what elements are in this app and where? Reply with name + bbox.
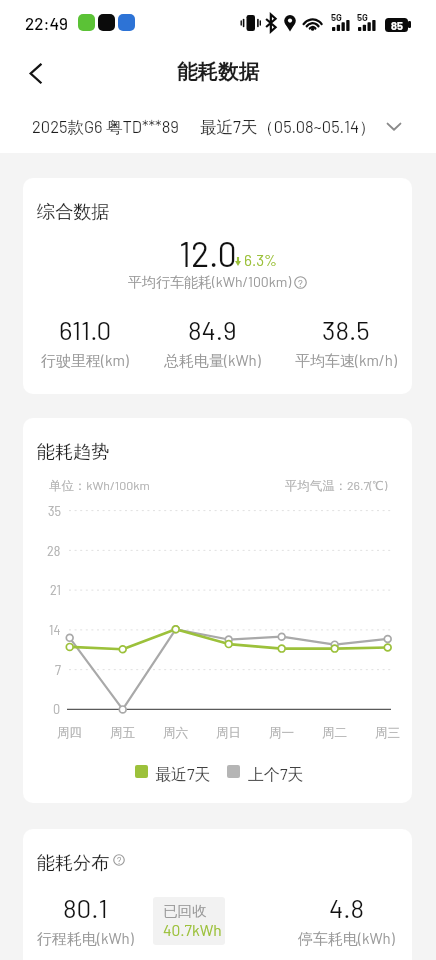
staticText: 14 [49,622,61,637]
staticText: 80.1 [63,892,108,923]
staticText: 周一 [269,725,295,741]
staticText: 上个7天 [248,764,304,785]
staticText: 单位：kWh/100km [49,478,150,494]
staticText: 平均车速(km/h) [295,351,397,370]
staticText: 能耗数据 [177,59,259,85]
staticText: 已回收 [163,902,207,920]
staticText: 最近7天（05.08~05.14） [200,116,376,137]
staticText: 4.8 [329,892,365,923]
staticText: 周五 [110,725,136,741]
staticText: 40.7kWh [163,920,222,939]
staticText: 22:49 [25,13,69,33]
button[interactable]: Back [14,52,56,94]
staticText: ? [298,277,303,289]
staticText: 行驶里程(km) [41,351,129,370]
staticText: 0 [53,701,61,716]
staticText: 6.3% [244,251,277,269]
staticText: 最近7天 [155,764,211,785]
staticText: 周日 [216,725,242,741]
staticText: 5G [331,11,342,22]
staticText: 平均气温：26.7(℃) [285,478,388,494]
staticText: 38.5 [322,314,370,345]
staticText: 5G [357,11,368,22]
staticText: 12.0 [179,233,237,274]
staticText: 21 [50,582,61,597]
staticText: 平均行车能耗(kWh/100km) [128,273,292,291]
staticText: 2025款G6 粤TD***89 [32,116,179,137]
staticText: 611.0 [59,314,112,345]
staticText: 综合数据 [37,201,110,224]
staticText: 行程耗电(kWh) [37,929,134,948]
staticText: ? [117,854,122,866]
staticText: 能耗分布 [37,852,110,875]
staticText: 35 [48,503,61,518]
staticText: 周四 [57,725,83,741]
staticText: 周二 [322,725,348,741]
staticText: 周六 [163,725,189,741]
button[interactable]: 2025款G6 粤TD***89 [32,108,401,144]
staticText: 能耗趋势 [37,441,110,464]
staticText: 总耗电量(kWh) [164,351,261,370]
staticText: 84.9 [188,314,237,345]
staticText: 85 [391,19,403,32]
staticText: 28 [47,543,61,558]
staticText: 7 [55,662,61,677]
staticText: 周三 [375,725,401,741]
staticText: 停车耗电(kWh) [298,929,395,948]
